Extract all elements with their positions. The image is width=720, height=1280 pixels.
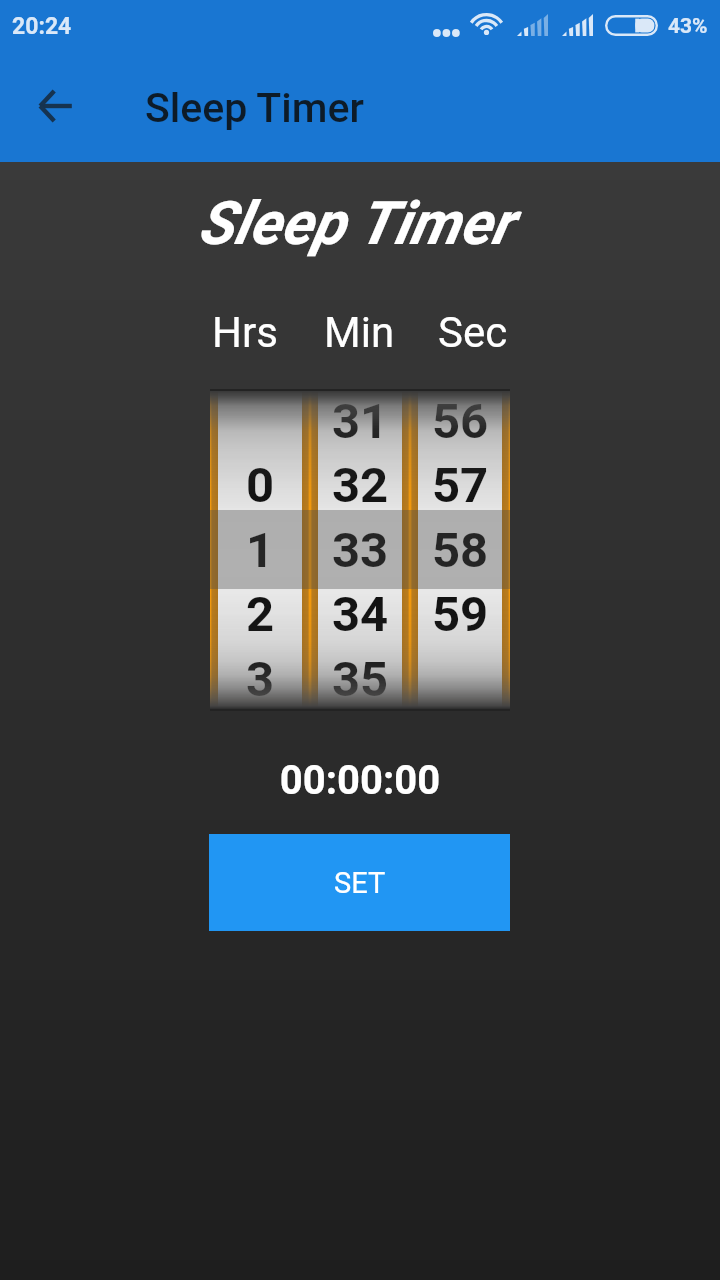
staticText: 32: [332, 457, 389, 514]
staticText: SET: [334, 866, 386, 900]
staticText: 1: [246, 522, 275, 579]
staticText: 35: [332, 651, 389, 708]
staticText: 33: [332, 522, 389, 579]
button[interactable]: SET: [209, 834, 510, 931]
staticText: 43%: [668, 14, 708, 39]
staticText: 59: [432, 586, 489, 643]
button[interactable]: Seconds: [410, 391, 510, 709]
staticText: Min: [324, 308, 395, 357]
staticText: Sleep Timer: [145, 84, 364, 132]
staticText: 2: [246, 586, 275, 643]
staticText: 20:24: [12, 13, 72, 40]
button[interactable]: Back: [24, 74, 88, 138]
staticText: 58: [432, 522, 489, 579]
staticText: Sec: [438, 308, 508, 357]
button[interactable]: Minutes: [310, 391, 410, 709]
staticText: 57: [432, 457, 489, 514]
staticText: 34: [332, 586, 389, 643]
staticText: 0: [246, 457, 275, 514]
button[interactable]: Hours: [210, 391, 310, 709]
staticText: 31: [332, 393, 389, 450]
staticText: Sleep Timer: [0, 188, 715, 258]
staticText: 56: [432, 393, 489, 450]
staticText: 3: [246, 651, 275, 708]
staticText: Hrs: [212, 308, 278, 357]
staticText: 00:00:00: [0, 757, 720, 804]
